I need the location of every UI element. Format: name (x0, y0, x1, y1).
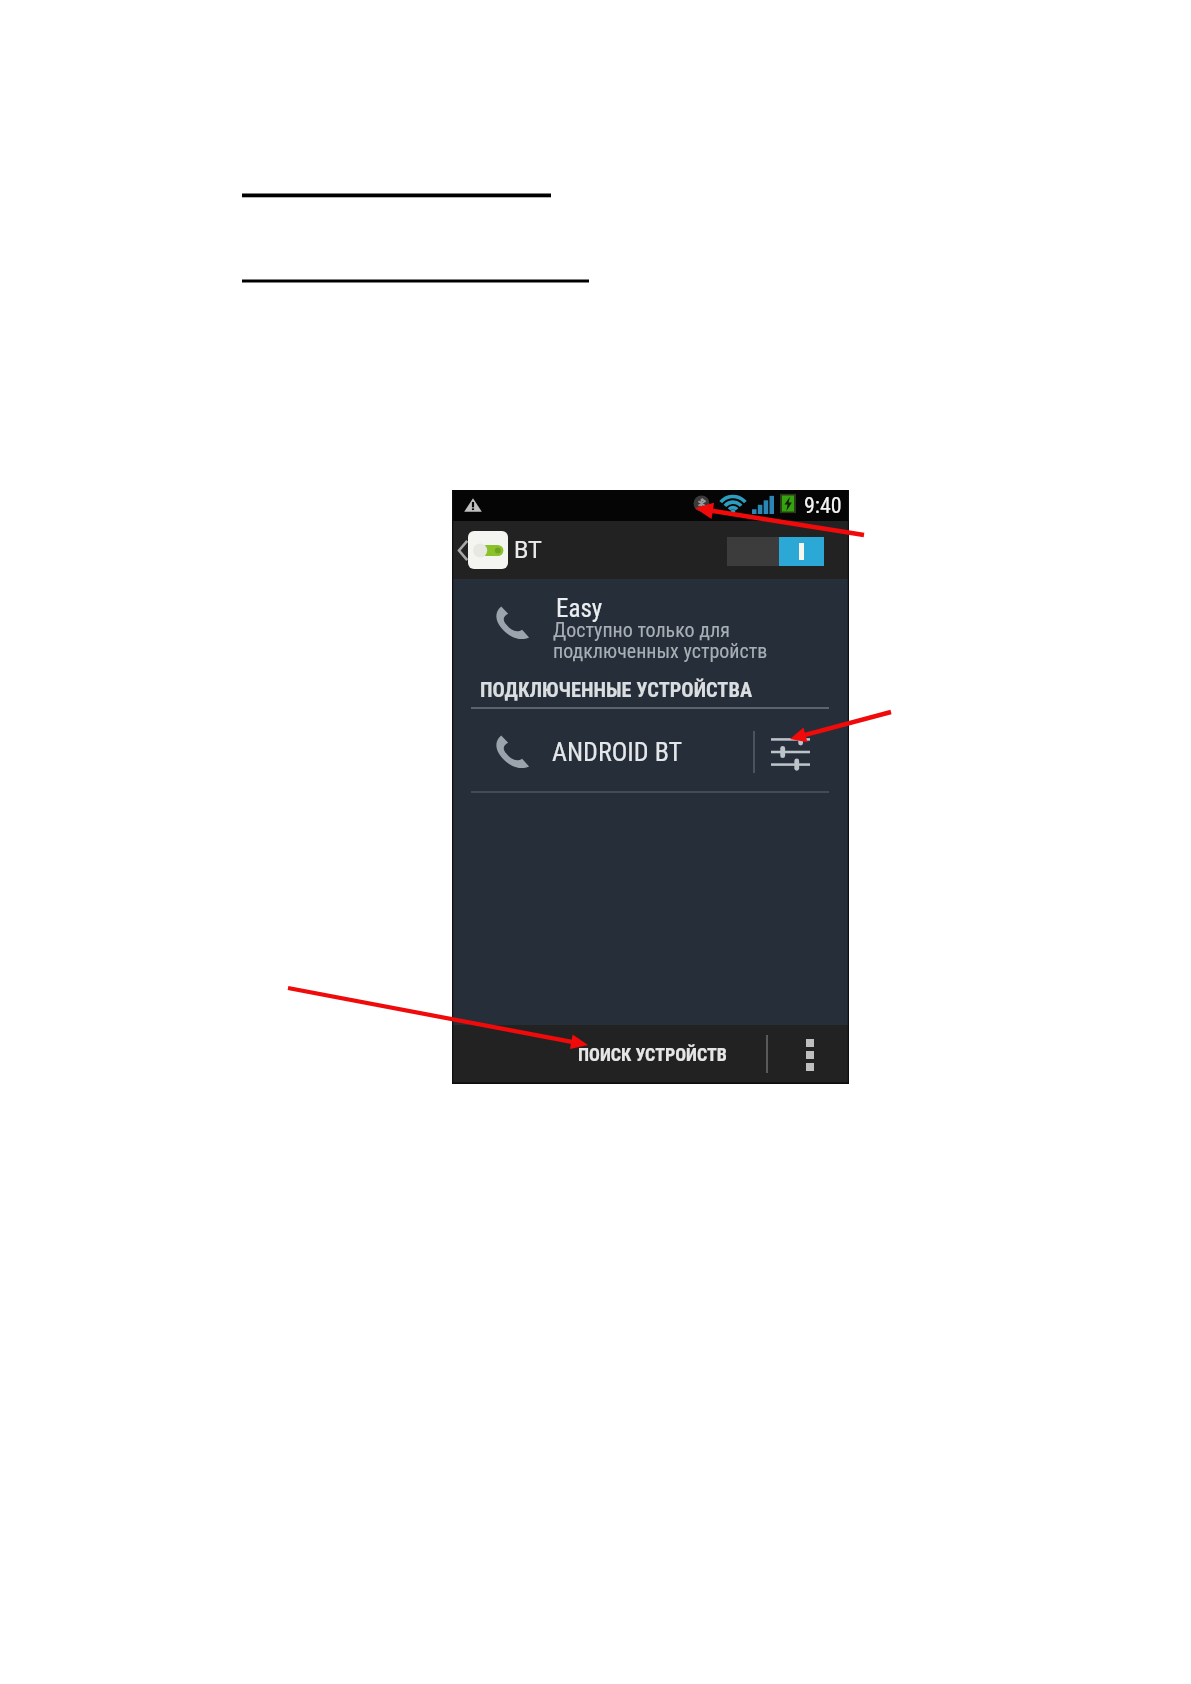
staticText: ANDROID BT (552, 737, 683, 767)
staticText: 9:40 (804, 493, 842, 519)
staticText: BT (514, 537, 542, 564)
button[interactable]: Device settings (760, 712, 820, 792)
button[interactable]: ПОИСК УСТРОЙСТВ (578, 1025, 727, 1084)
staticText: ПОДКЛЮЧЕННЫЕ УСТРОЙСТВА (480, 678, 753, 702)
button[interactable]: ANDROID BT (452, 712, 753, 792)
button[interactable]: More options (792, 1025, 828, 1084)
staticText: Easy (556, 594, 603, 623)
button[interactable]: BT (452, 521, 542, 579)
staticText: ПОИСК УСТРОЙСТВ (578, 1044, 727, 1065)
button[interactable]: Bluetooth on (727, 537, 824, 566)
staticText: Доступно только для подключенных устройс… (553, 618, 768, 663)
